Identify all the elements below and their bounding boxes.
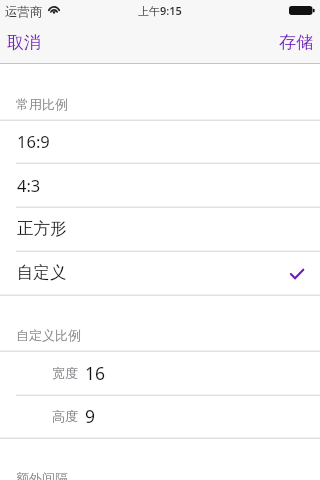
button[interactable]: 存储 xyxy=(269,20,320,64)
staticText: 存储 xyxy=(279,32,313,53)
button[interactable]: 4:3 xyxy=(0,164,320,207)
staticText: 自定义 xyxy=(17,262,67,283)
staticText: 常用比例 xyxy=(16,96,68,112)
other: Battery xyxy=(289,6,315,15)
staticText: 上午9:15 xyxy=(138,3,182,18)
staticText: 额外间隔 xyxy=(16,470,68,480)
other: Wi-Fi xyxy=(47,5,61,14)
staticText: 宽度 xyxy=(52,365,78,381)
staticText: 9 xyxy=(85,404,96,428)
staticText: 运营商 xyxy=(5,4,43,20)
staticText: 高度 xyxy=(52,408,78,424)
button[interactable]: 高度 xyxy=(0,396,320,438)
staticText: 16 xyxy=(85,361,106,385)
staticText: 取消 xyxy=(7,32,41,53)
staticText: 16:9 xyxy=(17,130,50,152)
staticText: 自定义比例 xyxy=(16,327,81,343)
button[interactable]: 自定义 xyxy=(0,252,320,295)
staticText: 4:3 xyxy=(17,174,41,196)
staticText: 正方形 xyxy=(17,218,67,239)
button[interactable]: 宽度 xyxy=(0,352,320,395)
button[interactable]: 取消 xyxy=(0,20,51,64)
button[interactable]: 正方形 xyxy=(0,208,320,251)
button[interactable]: 16:9 xyxy=(0,121,320,163)
